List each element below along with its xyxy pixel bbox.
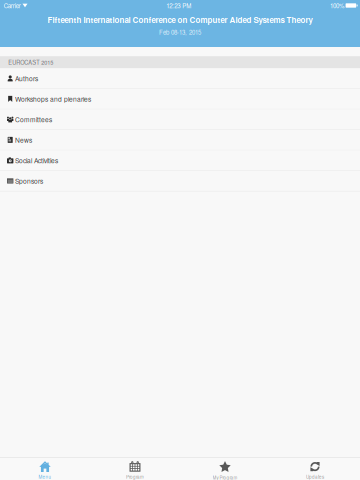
button[interactable]: Committees [0,109,360,130]
staticText: News [15,135,32,145]
button[interactable]: Program [90,458,180,480]
staticText: Menu [38,474,51,480]
staticText: Authors [15,74,38,83]
button[interactable]: Sponsors [0,171,360,191]
button[interactable]: My Program [180,458,270,480]
button[interactable]: Authors [0,68,360,89]
staticText: Sponsors [15,176,43,186]
staticText: 12:23 PM [166,1,191,10]
staticText: Carrier [4,1,21,10]
staticText: EUROCAST 2015 [8,58,53,66]
staticText: Program [126,474,144,480]
staticText: Feb 08-13, 2015 [159,28,201,36]
staticText: Social Activities [15,156,58,165]
button[interactable]: Updates [270,458,360,480]
staticText: Committees [15,115,52,124]
staticText: Workshops and plenaries [15,94,91,104]
staticText: My Program [212,474,237,480]
button[interactable]: Social Activities [0,150,360,171]
staticText: Fifteenth International Conference on Co… [47,14,312,25]
staticText: 100% [330,1,344,10]
staticText: Updates [306,474,324,480]
button[interactable]: News [0,130,360,150]
button[interactable]: Workshops and plenaries [0,89,360,109]
button[interactable]: Menu [0,458,90,480]
